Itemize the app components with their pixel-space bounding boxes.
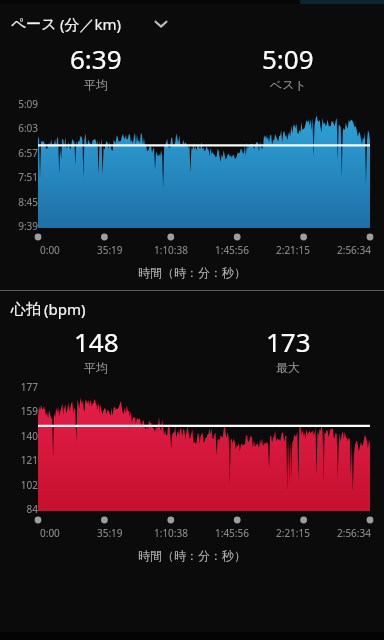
staticText: 心拍 (11, 300, 41, 319)
staticText: 140 (20, 429, 38, 443)
staticText: 2:56:34 (337, 526, 371, 540)
staticText: (分／km) (60, 14, 122, 34)
staticText: 平均 (84, 77, 108, 92)
staticText: 最大 (276, 360, 300, 375)
staticText: 6:57 (18, 146, 38, 160)
staticText: 6:39 (70, 41, 122, 76)
button[interactable]: 173 (192, 324, 384, 375)
button[interactable]: Change metric (149, 12, 173, 36)
staticText: 8:45 (18, 195, 38, 209)
staticText: 35:19 (97, 243, 123, 257)
staticText: 2:21:15 (276, 526, 310, 540)
staticText: 0:00 (40, 243, 60, 257)
staticText: 1:45:56 (215, 526, 249, 540)
staticText: 平均 (84, 360, 108, 375)
staticText: 時間（時：分：秒） (138, 265, 246, 280)
staticText: 1:45:56 (215, 243, 249, 257)
staticText: 148 (74, 324, 119, 359)
staticText: 121 (20, 453, 38, 467)
staticText: 時間（時：分：秒） (138, 548, 246, 563)
staticText: 2:56:34 (337, 243, 371, 257)
button[interactable]: 心拍 (0, 297, 384, 321)
staticText: 1:10:38 (154, 243, 188, 257)
staticText: 2:21:15 (276, 243, 310, 257)
staticText: ベスト (270, 77, 307, 92)
button[interactable]: 148 (0, 324, 192, 375)
staticText: (bpm) (44, 299, 86, 319)
staticText: 102 (20, 478, 38, 492)
button[interactable]: 6:39 (0, 41, 192, 92)
button[interactable]: 5:09 (192, 41, 384, 92)
staticText: 0:00 (40, 526, 60, 540)
button[interactable]: ペース (0, 10, 384, 38)
staticText: 5:09 (18, 97, 38, 111)
staticText: 35:19 (97, 526, 123, 540)
staticText: 6:03 (18, 121, 38, 135)
staticText: 177 (20, 380, 38, 394)
staticText: 173 (266, 324, 311, 359)
staticText: ペース (11, 15, 57, 34)
staticText: 84 (26, 502, 38, 516)
staticText: 159 (20, 404, 38, 418)
staticText: 7:51 (18, 170, 38, 184)
staticText: 1:10:38 (154, 526, 188, 540)
staticText: 9:39 (18, 219, 38, 233)
staticText: 5:09 (262, 41, 314, 76)
